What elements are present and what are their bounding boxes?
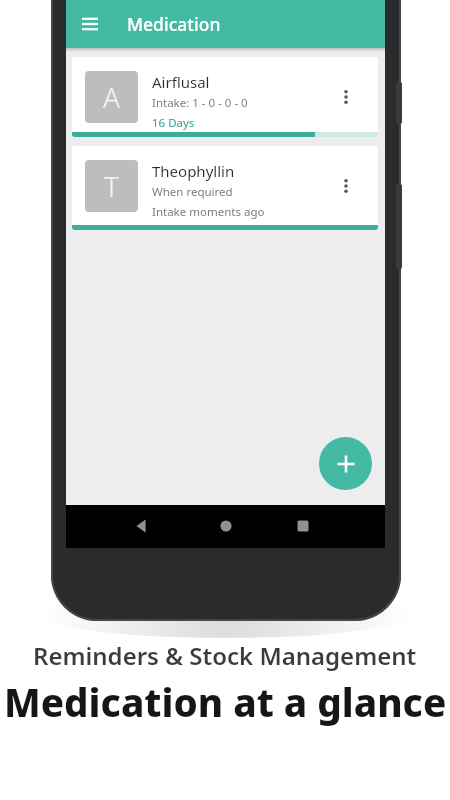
button[interactable]: A [72, 57, 378, 137]
button[interactable] [81, 15, 99, 33]
button[interactable]: T [72, 146, 378, 230]
staticText: T [104, 167, 119, 205]
staticText: Intake moments ago [152, 204, 265, 220]
staticText: 16 Days [152, 115, 195, 131]
staticText: Medication [127, 12, 221, 36]
button[interactable] [293, 516, 313, 536]
staticText: Medication at a glance [4, 676, 447, 728]
button[interactable] [216, 516, 236, 536]
staticText: When required [152, 184, 233, 200]
staticText: Theophyllin [152, 161, 235, 181]
staticText: Airflusal [152, 72, 210, 92]
button[interactable] [334, 174, 358, 198]
staticText: A [103, 78, 121, 116]
button[interactable] [132, 516, 152, 536]
staticText: Intake: 1 - 0 - 0 - 0 [152, 95, 248, 111]
staticText: Reminders & Stock Management [33, 639, 417, 672]
button[interactable] [319, 437, 372, 490]
button[interactable] [334, 85, 358, 109]
